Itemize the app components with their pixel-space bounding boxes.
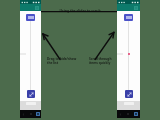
button[interactable]: Scroll through [89,57,112,65]
button[interactable]: Using the slider to scrub [59,8,101,13]
staticText: Drag to hide/show [47,57,77,61]
button[interactable]: Settings [117,4,140,11]
button[interactable] [30,21,31,93]
button[interactable] [124,14,133,21]
button[interactable]: Expand [125,90,133,98]
button[interactable]: Settings [35,6,39,10]
button[interactable]: Settings [134,6,138,10]
button[interactable]: Recents [132,110,140,118]
button[interactable]: Settings [20,4,41,11]
staticText: Using the slider to scrub [59,8,101,13]
button[interactable]: Back [117,110,124,118]
button[interactable] [128,21,129,93]
staticText: the list [47,61,59,65]
button[interactable]: Home [124,110,132,118]
button[interactable]: Back [20,110,27,118]
button[interactable] [26,14,35,21]
button[interactable]: Recents [34,110,41,118]
staticText: Scroll through [89,57,112,61]
button[interactable]: Home [27,110,34,118]
button[interactable]: Expand [27,90,35,98]
staticText: items quickly [89,61,111,65]
button[interactable]: Drag to hide/show [47,57,77,65]
button[interactable]: Slider handle [128,53,130,55]
